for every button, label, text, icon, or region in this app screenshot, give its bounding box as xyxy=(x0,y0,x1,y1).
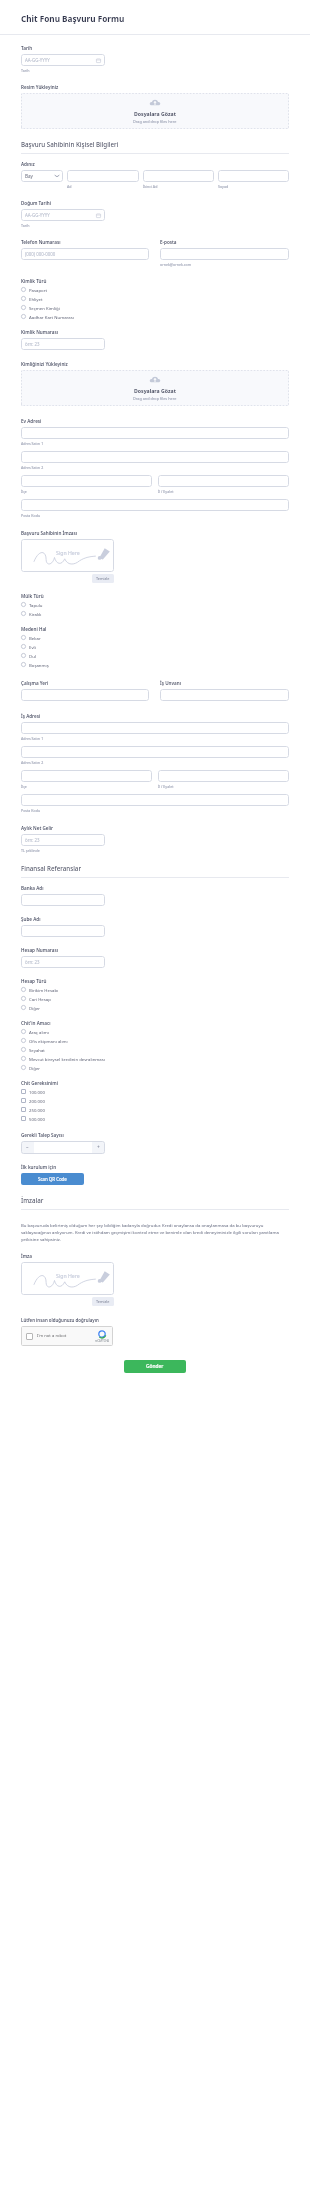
button[interactable] xyxy=(21,427,289,439)
button[interactable] xyxy=(21,770,152,782)
button[interactable]: Cari Hesap xyxy=(21,994,289,1003)
button[interactable]: Gönder xyxy=(124,1360,186,1373)
button[interactable]: Seyahat xyxy=(21,1045,289,1054)
button[interactable] xyxy=(21,746,289,758)
button[interactable]: Sign Here xyxy=(21,1262,114,1295)
button[interactable]: Diğer xyxy=(21,1003,289,1012)
button[interactable]: Temizle xyxy=(92,1297,114,1306)
staticText: Adres Satırı 2 xyxy=(21,760,44,765)
button[interactable]: Evli xyxy=(21,642,289,651)
staticText: Araç alımı xyxy=(29,1029,49,1035)
button[interactable]: Aadhar Kart Numarası xyxy=(21,312,289,321)
staticText: 500.000 xyxy=(29,1116,45,1122)
staticText: TL şeklinde xyxy=(21,848,40,853)
staticText: Dosyalara Gözat xyxy=(134,110,176,117)
button[interactable] xyxy=(67,170,139,182)
button[interactable] xyxy=(218,170,289,182)
button[interactable] xyxy=(21,475,152,487)
staticText: E-posta xyxy=(160,239,177,245)
button[interactable]: Ehliyet xyxy=(21,294,289,303)
staticText: (000) 000-0000 xyxy=(25,251,145,257)
staticText: Drag and drop files here xyxy=(133,396,177,401)
button[interactable]: AA-GG-YYYY xyxy=(21,209,105,221)
button[interactable] xyxy=(21,722,289,734)
staticText: Tapulu xyxy=(29,602,43,608)
button[interactable]: Artır xyxy=(92,1141,105,1154)
staticText: Drag and drop files here xyxy=(133,119,177,124)
button[interactable]: 100.000 xyxy=(21,1087,289,1096)
staticText: Kimlik Türü xyxy=(21,278,47,284)
staticText: Telefon Numarası xyxy=(21,239,61,245)
button[interactable] xyxy=(21,925,105,937)
button[interactable]: Tapulu xyxy=(21,600,289,609)
button[interactable]: Sign Here xyxy=(21,539,114,572)
button[interactable]: Diğer xyxy=(21,1063,289,1072)
staticText: Diğer xyxy=(29,1065,41,1071)
staticText: Birikim Hesabı xyxy=(29,987,59,993)
staticText: Evli xyxy=(29,644,36,650)
button[interactable]: Mevcut bireysel kredinin devralınması xyxy=(21,1054,289,1063)
staticText: Medeni Hal xyxy=(21,626,47,632)
button[interactable] xyxy=(21,499,289,511)
button[interactable] xyxy=(21,894,105,906)
button[interactable]: 250.000 xyxy=(21,1105,289,1114)
staticText: örn: 23 xyxy=(25,959,101,965)
button[interactable] xyxy=(158,475,289,487)
staticText: Diğer xyxy=(29,1005,41,1011)
staticText: Sign Here xyxy=(56,1272,80,1279)
staticText: Soyad xyxy=(218,184,229,189)
staticText: Bu başvuruda belirtmiş olduğum her şey b… xyxy=(21,1222,289,1242)
staticText: İlk kurulum için xyxy=(21,1164,57,1170)
button[interactable] xyxy=(160,248,289,260)
button[interactable] xyxy=(21,794,289,806)
button[interactable]: Dosyalara Gözat xyxy=(21,93,289,129)
staticText: Posta Kodu xyxy=(21,513,41,518)
staticText: Dosyalara Gözat xyxy=(134,387,176,394)
staticText: Bekar xyxy=(29,635,41,641)
button[interactable]: Bay xyxy=(21,170,63,182)
button[interactable]: 500.000 xyxy=(21,1114,289,1123)
staticText: Kiralık xyxy=(29,611,42,617)
button[interactable]: Seçmen Kimliği xyxy=(21,303,289,312)
button[interactable] xyxy=(158,770,289,782)
button[interactable]: Azalt xyxy=(21,1141,34,1154)
button[interactable]: I'm not a robot xyxy=(21,1326,113,1346)
button[interactable]: Bekar xyxy=(21,633,289,642)
staticText: İş Unvanı xyxy=(160,680,181,686)
button[interactable]: Dul xyxy=(21,651,289,660)
button[interactable]: Pasaport xyxy=(21,285,289,294)
button[interactable] xyxy=(21,451,289,463)
staticText: Tarih xyxy=(21,45,33,51)
button[interactable] xyxy=(21,689,149,701)
button[interactable]: örn: 23 xyxy=(21,956,105,968)
staticText: Ofis ekipmanı alımı xyxy=(29,1038,68,1044)
staticText: örn: 23 xyxy=(25,341,101,347)
staticText: İş Adresi xyxy=(21,713,41,719)
button[interactable]: Temizle xyxy=(92,574,114,583)
button[interactable]: örn: 23 xyxy=(21,338,105,350)
button[interactable]: Dosyalara Gözat xyxy=(21,370,289,406)
staticText: Doğum Tarihi xyxy=(21,200,52,206)
button[interactable]: Kiralık xyxy=(21,609,289,618)
staticText: Dul xyxy=(29,653,36,659)
staticText: Ad xyxy=(67,184,72,189)
staticText: İl / Eyalet xyxy=(158,784,174,789)
button[interactable]: 200.000 xyxy=(21,1096,289,1105)
button[interactable]: örn: 23 xyxy=(21,834,105,846)
button[interactable]: (000) 000-0000 xyxy=(21,248,149,260)
button[interactable]: Ofis ekipmanı alımı xyxy=(21,1036,289,1045)
staticText: reCAPTCHA xyxy=(95,1339,109,1343)
staticText: Tarih xyxy=(21,68,30,73)
staticText: İl / Eyalet xyxy=(158,489,174,494)
staticText: ornek@ornek.com xyxy=(160,262,192,267)
button[interactable]: Araç alımı xyxy=(21,1027,289,1036)
staticText: Chit Gereksinimi xyxy=(21,1080,59,1086)
button[interactable]: AA-GG-YYYY xyxy=(21,54,105,66)
button[interactable] xyxy=(160,689,289,701)
staticText: Seçmen Kimliği xyxy=(29,305,60,311)
button[interactable]: Scan QR Code xyxy=(21,1173,84,1185)
staticText: – xyxy=(26,1144,29,1151)
button[interactable] xyxy=(143,170,214,182)
button[interactable]: Boşanmış xyxy=(21,660,289,669)
button[interactable]: Birikim Hesabı xyxy=(21,985,289,994)
